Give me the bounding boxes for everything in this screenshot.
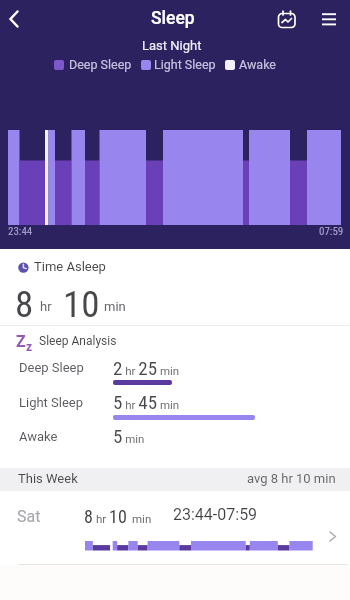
staticText: 10 [63,283,100,326]
staticText: min [132,512,152,525]
staticText: avg 8 hr 10 min [247,471,336,486]
staticText: Sleep Analysis [39,334,117,348]
staticText: min [104,299,126,314]
staticText: 23:44 [8,225,33,238]
button[interactable] [4,6,26,32]
button[interactable] [276,9,298,31]
staticText: Sat [17,507,41,526]
staticText: Sleep [151,8,195,29]
staticText: Z [16,332,26,351]
staticText: 5 min [113,425,145,447]
button[interactable] [318,8,342,32]
button[interactable] [0,252,350,324]
staticText: 2 hr 25 min [113,357,180,379]
staticText: Light Sleep [19,395,84,410]
staticText: z [26,340,33,354]
staticText: Time Asleep [34,259,106,274]
staticText: Deep Sleep [69,57,132,72]
staticText: 23:44-07:59 [173,505,258,524]
staticText: Light Sleep [154,57,216,72]
staticText: Awake [239,57,276,72]
staticText: 5 hr 45 min [113,391,180,413]
staticText: 8 [84,506,93,527]
staticText: Awake [19,429,58,444]
button[interactable]: Sat [0,491,350,563]
staticText: hr [96,512,107,525]
staticText: 07:59 [319,225,344,238]
staticText: Last Night [142,38,202,53]
staticText: 8 [15,283,34,326]
staticText: This Week [18,471,78,486]
staticText: hr [40,299,52,314]
staticText: 10 [109,506,127,527]
staticText: Deep Sleep [19,360,84,375]
